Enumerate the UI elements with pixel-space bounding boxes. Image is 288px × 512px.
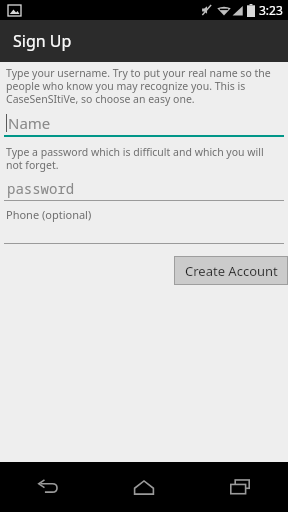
- staticText: Sign Up: [13, 30, 72, 52]
- button[interactable]: Home: [120, 463, 168, 511]
- staticText: Name: [8, 113, 51, 133]
- button[interactable]: Back: [24, 463, 72, 511]
- staticText: Phone (optional): [6, 207, 92, 222]
- staticText: Type your username. Try to put your real…: [6, 66, 280, 106]
- button[interactable]: Phone (optional): [4, 207, 284, 244]
- button[interactable]: Name: [4, 110, 284, 137]
- button[interactable]: Recent apps: [216, 463, 264, 511]
- button[interactable]: Create Account: [174, 256, 288, 285]
- button[interactable]: password: [4, 176, 284, 201]
- staticText: Type a password which is difficult and w…: [6, 145, 280, 172]
- staticText: password: [7, 179, 75, 198]
- staticText: Create Account: [185, 262, 278, 280]
- staticText: 3:23: [259, 2, 283, 18]
